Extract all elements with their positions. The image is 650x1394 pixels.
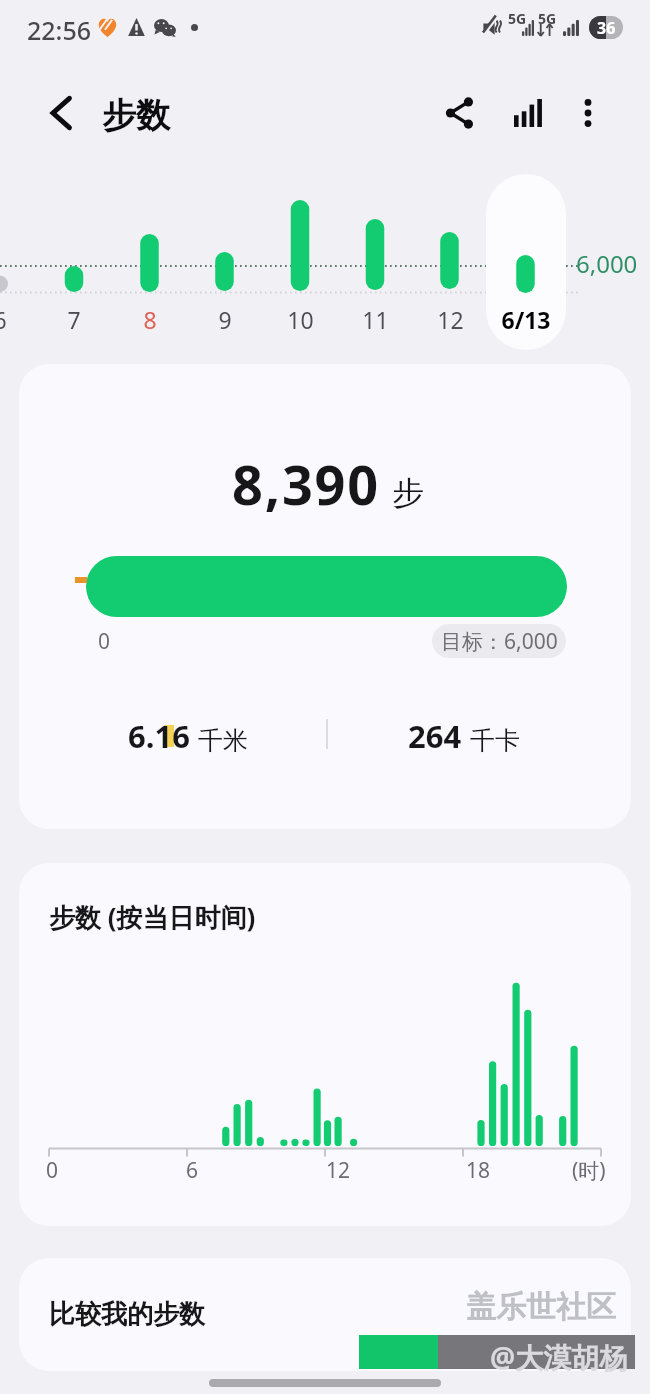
staticText: 步数 (按当日时间)	[49, 899, 256, 935]
staticText: 6/13	[501, 304, 551, 335]
staticText: 5G	[508, 9, 527, 28]
staticText: 22:56	[27, 13, 92, 47]
staticText: 9	[218, 304, 232, 335]
staticText: 盖乐世社区	[466, 1288, 616, 1326]
staticText: 目标：6,000	[441, 627, 558, 656]
staticText: @大漠胡杨	[490, 1338, 628, 1376]
staticText: 6	[0, 304, 7, 335]
button[interactable]: Back	[31, 83, 91, 143]
button[interactable]: Selected day 6/13	[486, 174, 566, 350]
staticText: 0	[46, 1156, 59, 1185]
button[interactable]: Statistics	[498, 83, 558, 143]
staticText: 千米	[198, 725, 248, 756]
staticText: 11	[362, 304, 389, 335]
staticText: 6,000	[576, 247, 638, 280]
button[interactable]: 8,390	[19, 364, 631, 829]
staticText: 12	[437, 304, 464, 335]
staticText: 6.16	[128, 715, 190, 757]
staticText: 比较我的步数	[49, 1298, 205, 1331]
button[interactable]: 步数 (按当日时间)	[19, 863, 631, 1226]
staticText: 36	[597, 17, 616, 39]
staticText: (时)	[572, 1156, 606, 1185]
staticText: 8,390	[232, 447, 380, 521]
button[interactable]: More options	[558, 83, 618, 143]
staticText: 12	[326, 1156, 351, 1185]
staticText: 步数	[102, 94, 170, 137]
staticText: 5G	[538, 9, 557, 28]
staticText: 步	[392, 473, 424, 513]
staticText: 8	[143, 304, 157, 335]
staticText: 千卡	[470, 725, 520, 756]
staticText: 10	[287, 304, 314, 335]
staticText: 264	[408, 715, 462, 757]
staticText: 18	[466, 1156, 491, 1185]
staticText: 6	[186, 1156, 199, 1185]
staticText: 0	[98, 627, 111, 656]
button[interactable]: 比较我的步数	[19, 1258, 631, 1371]
staticText: 7	[67, 304, 81, 335]
button[interactable]: Share	[430, 83, 490, 143]
